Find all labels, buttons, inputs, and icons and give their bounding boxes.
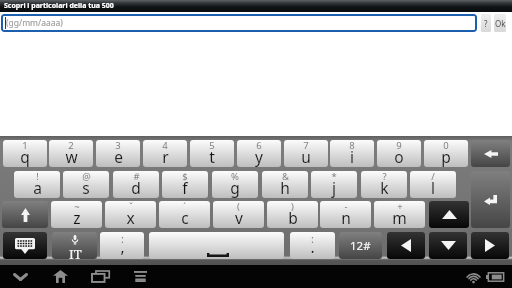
staticText: Scopri i particolari della tua 500 — [4, 1, 114, 11]
staticText: y — [255, 146, 263, 167]
staticText: s — [82, 177, 90, 198]
staticText: c — [181, 207, 189, 228]
staticText: / — [431, 171, 435, 183]
button[interactable]: & — [262, 171, 308, 198]
staticText: 1 — [22, 140, 28, 152]
button[interactable]: Home — [40, 265, 80, 288]
button[interactable]: 3 — [96, 140, 140, 167]
button[interactable]: 1 — [3, 140, 47, 167]
button[interactable]: Wi-Fi — [462, 265, 484, 288]
button[interactable]: Move up — [429, 201, 469, 228]
button[interactable]: ´ — [159, 201, 210, 228]
button[interactable]: Move left — [387, 232, 425, 259]
staticText: : — [121, 232, 124, 246]
button[interactable]: / — [410, 171, 456, 198]
staticText: h — [280, 177, 290, 198]
staticText: ˇ — [129, 201, 133, 213]
staticText: % — [231, 171, 239, 183]
button[interactable]: ~ — [51, 201, 102, 228]
staticText: 6 — [256, 140, 262, 152]
button[interactable]: 9 — [377, 140, 421, 167]
button[interactable]: : — [100, 232, 144, 259]
button[interactable]: Space — [149, 232, 284, 259]
button[interactable]: 7 — [284, 140, 328, 167]
button[interactable]: # — [113, 171, 159, 198]
button[interactable]: ) — [267, 201, 318, 228]
staticText: j — [332, 177, 336, 198]
staticText: ~ — [74, 201, 80, 213]
staticText: : — [311, 232, 314, 246]
button[interactable]: @ — [63, 171, 109, 198]
button[interactable]: 2 — [49, 140, 93, 167]
button[interactable]: Hide keyboard — [3, 232, 47, 259]
button[interactable]: 4 — [143, 140, 187, 167]
staticText: 12# — [350, 238, 371, 254]
button[interactable]: 5 — [190, 140, 234, 167]
staticText: # — [133, 171, 140, 183]
button[interactable]: + — [374, 201, 425, 228]
staticText: $ — [182, 171, 188, 183]
staticText: , — [120, 236, 125, 257]
staticText: * — [331, 171, 337, 183]
staticText: 9 — [396, 140, 402, 152]
staticText: IT — [69, 245, 82, 259]
staticText: p — [441, 146, 451, 167]
button[interactable]: : — [290, 232, 335, 259]
staticText: o — [394, 146, 404, 167]
staticText: v — [235, 207, 243, 228]
staticText: g — [230, 177, 240, 198]
button[interactable]: % — [212, 171, 258, 198]
staticText: (gg/mm/aaaa) — [6, 17, 63, 29]
staticText: x — [126, 207, 135, 228]
button[interactable]: Move right — [471, 232, 509, 259]
button[interactable]: Menu — [120, 265, 160, 288]
staticText: z — [73, 207, 81, 228]
staticText: @ — [82, 171, 91, 183]
staticText: ! — [36, 171, 39, 183]
staticText: m — [392, 207, 407, 228]
staticText: 2 — [68, 140, 74, 152]
button[interactable]: Recent apps — [80, 265, 120, 288]
button[interactable]: Shift — [2, 201, 48, 228]
button[interactable]: Input language Italian, voice typing — [52, 232, 97, 259]
button[interactable]: ( — [213, 201, 264, 228]
staticText: ( — [237, 201, 240, 213]
staticText: k — [380, 177, 389, 198]
staticText: w — [65, 146, 78, 167]
button[interactable]: Enter — [471, 171, 510, 228]
button[interactable]: ! — [14, 171, 60, 198]
staticText: + — [397, 201, 403, 213]
staticText: q — [20, 146, 30, 167]
staticText: u — [301, 146, 311, 167]
staticText: 8 — [349, 140, 355, 152]
staticText: t — [209, 146, 215, 167]
button[interactable]: Backspace — [471, 140, 510, 167]
button[interactable]: ? — [481, 14, 491, 32]
staticText: - — [344, 201, 348, 213]
staticText: l — [431, 177, 435, 198]
button[interactable]: Symbols — [339, 232, 382, 259]
staticText: 4 — [162, 140, 168, 152]
staticText: . — [310, 236, 315, 257]
button[interactable]: 6 — [237, 140, 281, 167]
staticText: a — [33, 177, 42, 198]
button[interactable]: Battery — [484, 265, 506, 288]
staticText: Ok — [495, 18, 506, 29]
button[interactable]: (gg/mm/aaaa) — [1, 14, 477, 32]
button[interactable]: * — [311, 171, 357, 198]
button[interactable]: 8 — [330, 140, 374, 167]
staticText: 5 — [209, 140, 215, 152]
button[interactable]: ? — [361, 171, 407, 198]
button[interactable]: ˇ — [105, 201, 156, 228]
staticText: r — [162, 146, 169, 167]
staticText: & — [282, 171, 289, 183]
button[interactable]: 0 — [424, 140, 468, 167]
staticText: 3 — [115, 140, 121, 152]
button[interactable]: - — [320, 201, 371, 228]
button[interactable]: Move down — [429, 232, 467, 259]
button[interactable]: Back — [0, 265, 40, 288]
button[interactable]: $ — [162, 171, 208, 198]
staticText: 7 — [303, 140, 309, 152]
button[interactable]: Ok — [494, 14, 506, 32]
staticText: e — [114, 146, 123, 167]
